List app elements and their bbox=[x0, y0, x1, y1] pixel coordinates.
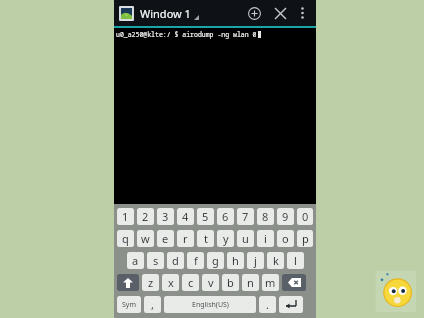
button[interactable]: Backspace bbox=[282, 274, 306, 291]
button[interactable]: 3 bbox=[157, 208, 174, 225]
button[interactable]: 6 bbox=[217, 208, 234, 225]
button[interactable]: . bbox=[259, 296, 276, 313]
button[interactable]: Window 1 bbox=[140, 6, 199, 21]
staticText: x bbox=[168, 275, 174, 290]
staticText: e bbox=[162, 231, 169, 246]
button[interactable]: 1 bbox=[117, 208, 134, 225]
button[interactable]: b bbox=[222, 274, 239, 291]
button[interactable]: Sym bbox=[117, 296, 141, 313]
button[interactable]: m bbox=[262, 274, 279, 291]
button[interactable]: t bbox=[197, 230, 214, 247]
staticText: n bbox=[247, 275, 254, 290]
staticText: p bbox=[302, 231, 309, 246]
staticText: . bbox=[266, 297, 269, 312]
button[interactable]: 2 bbox=[137, 208, 154, 225]
staticText: 3 bbox=[162, 209, 169, 224]
staticText: d bbox=[172, 253, 179, 268]
staticText: f bbox=[194, 253, 198, 268]
button[interactable]: 0 bbox=[297, 208, 313, 225]
staticText: 7 bbox=[242, 209, 249, 224]
staticText: s bbox=[153, 253, 159, 268]
button[interactable]: j bbox=[247, 252, 264, 269]
button[interactable]: English(US) bbox=[164, 296, 256, 313]
staticText: v bbox=[208, 275, 214, 290]
button[interactable]: App icon bbox=[121, 8, 132, 19]
staticText: i bbox=[264, 231, 267, 246]
staticText: j bbox=[254, 253, 257, 268]
staticText: m bbox=[265, 275, 276, 290]
staticText: 8 bbox=[262, 209, 269, 224]
button[interactable]: , bbox=[144, 296, 161, 313]
staticText: h bbox=[232, 253, 239, 268]
button[interactable]: Enter bbox=[279, 296, 303, 313]
button[interactable]: i bbox=[257, 230, 274, 247]
button[interactable]: g bbox=[207, 252, 224, 269]
staticText: 6 bbox=[222, 209, 229, 224]
button[interactable]: e bbox=[157, 230, 174, 247]
staticText: z bbox=[148, 275, 154, 290]
staticText: 1 bbox=[122, 209, 129, 224]
button[interactable]: x bbox=[162, 274, 179, 291]
button[interactable]: w bbox=[137, 230, 154, 247]
button[interactable]: 4 bbox=[177, 208, 194, 225]
button[interactable]: l bbox=[287, 252, 304, 269]
button[interactable]: 5 bbox=[197, 208, 214, 225]
button[interactable]: k bbox=[267, 252, 284, 269]
button[interactable]: 8 bbox=[257, 208, 274, 225]
staticText: u0_a250@klte:/ $ airodump -ng wlan 0 bbox=[116, 30, 257, 39]
button[interactable]: s bbox=[147, 252, 164, 269]
staticText: g bbox=[212, 253, 219, 268]
staticText: , bbox=[151, 297, 154, 312]
staticText: 5 bbox=[202, 209, 209, 224]
button[interactable]: r bbox=[177, 230, 194, 247]
button[interactable]: y bbox=[217, 230, 234, 247]
staticText: a bbox=[132, 253, 139, 268]
button[interactable]: u0_a250@klte:/ $ airodump -ng wlan 0 bbox=[114, 28, 316, 204]
staticText: u bbox=[242, 231, 249, 246]
button[interactable]: v bbox=[202, 274, 219, 291]
button[interactable]: a bbox=[127, 252, 144, 269]
staticText: l bbox=[294, 253, 297, 268]
staticText: 4 bbox=[182, 209, 189, 224]
staticText: o bbox=[282, 231, 289, 246]
button[interactable]: More options bbox=[293, 4, 311, 22]
button[interactable]: z bbox=[142, 274, 159, 291]
button[interactable]: 9 bbox=[277, 208, 294, 225]
staticText: b bbox=[227, 275, 234, 290]
staticText: k bbox=[273, 253, 279, 268]
button[interactable]: f bbox=[187, 252, 204, 269]
staticText: t bbox=[204, 231, 208, 246]
button[interactable]: Shift bbox=[117, 274, 139, 291]
staticText: r bbox=[183, 231, 188, 246]
staticText: 9 bbox=[282, 209, 289, 224]
staticText: English(US) bbox=[192, 300, 229, 310]
button[interactable]: p bbox=[297, 230, 313, 247]
button[interactable]: n bbox=[242, 274, 259, 291]
button[interactable]: c bbox=[182, 274, 199, 291]
button[interactable]: o bbox=[277, 230, 294, 247]
staticText: Window 1 bbox=[140, 6, 191, 21]
button[interactable]: 7 bbox=[237, 208, 254, 225]
button[interactable]: h bbox=[227, 252, 244, 269]
staticText: 2 bbox=[142, 209, 149, 224]
staticText: w bbox=[141, 231, 150, 246]
button[interactable]: u bbox=[237, 230, 254, 247]
button[interactable]: Close window bbox=[268, 1, 292, 25]
staticText: y bbox=[223, 231, 229, 246]
button[interactable]: New window bbox=[242, 1, 266, 25]
button[interactable]: d bbox=[167, 252, 184, 269]
button[interactable]: q bbox=[117, 230, 134, 247]
staticText: 0 bbox=[302, 209, 309, 224]
staticText: q bbox=[122, 231, 129, 246]
staticText: Sym bbox=[122, 300, 136, 310]
staticText: c bbox=[188, 275, 194, 290]
